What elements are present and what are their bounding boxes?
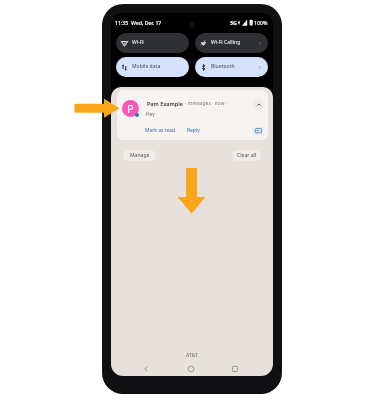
staticText: AT&T (111, 352, 273, 359)
staticText: Manage (130, 152, 150, 159)
staticText: · messages · now · (184, 100, 227, 107)
button[interactable]: Back (140, 363, 152, 375)
button[interactable]: Wi-Fi Calling (195, 33, 268, 53)
button[interactable]: Manage (123, 150, 156, 161)
staticText: Wi-Fi (132, 39, 144, 46)
staticText: 11:35 Wed, Dec 17 (115, 19, 162, 26)
button[interactable]: P (117, 90, 268, 140)
button[interactable]: Recent apps (229, 363, 241, 375)
staticText: 100% (254, 19, 268, 26)
staticText: Bluetooth (211, 63, 235, 70)
staticText: Reply (187, 127, 200, 134)
button[interactable]: Bluetooth (195, 57, 268, 77)
staticText: Mark as read (145, 127, 176, 134)
staticText: Clear all (237, 152, 257, 159)
button[interactable]: Mark as read (143, 125, 178, 136)
staticText: 5G (230, 19, 237, 26)
staticText: Mobile data (132, 63, 161, 70)
button[interactable]: Reply (185, 125, 202, 136)
button[interactable]: Collapse notification (253, 99, 264, 110)
staticText: Hey (146, 111, 155, 118)
staticText: P (127, 101, 134, 116)
button[interactable]: Mobile data (116, 57, 189, 77)
staticText: Wi-Fi Calling (211, 39, 241, 46)
button[interactable]: Smart reply (253, 127, 263, 135)
button[interactable]: Wi-Fi (116, 33, 189, 53)
button[interactable]: Home (185, 363, 197, 375)
staticText: Pam Example (147, 100, 184, 107)
button[interactable]: Clear all (232, 150, 261, 161)
